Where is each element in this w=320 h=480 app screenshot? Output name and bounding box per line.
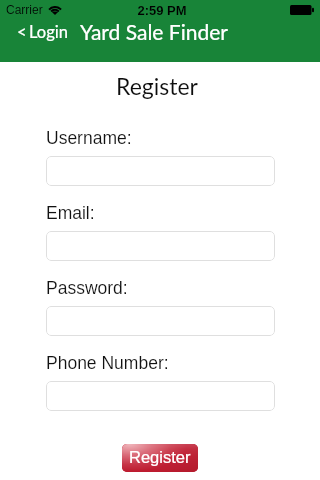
staticText: Username:	[46, 128, 132, 148]
button[interactable]	[46, 381, 275, 411]
staticText: Email:	[46, 203, 95, 223]
other: Wi-Fi signal	[49, 5, 61, 15]
staticText: Login	[29, 22, 68, 42]
staticText: Register	[0, 72, 317, 100]
button[interactable]	[46, 306, 275, 336]
staticText: Phone Number:	[46, 353, 169, 373]
staticText: 2:59 PM	[2, 3, 320, 18]
staticText: Carrier	[6, 3, 43, 16]
other: Battery	[290, 5, 314, 15]
staticText: Register	[129, 448, 191, 466]
button[interactable]	[46, 156, 275, 186]
staticText: Password:	[46, 278, 128, 298]
button[interactable]: Register	[122, 444, 198, 472]
staticText: Yard Sale Finder	[0, 19, 314, 44]
button[interactable]: <	[11, 19, 72, 45]
button[interactable]	[46, 231, 275, 261]
staticText: <	[17, 22, 27, 42]
